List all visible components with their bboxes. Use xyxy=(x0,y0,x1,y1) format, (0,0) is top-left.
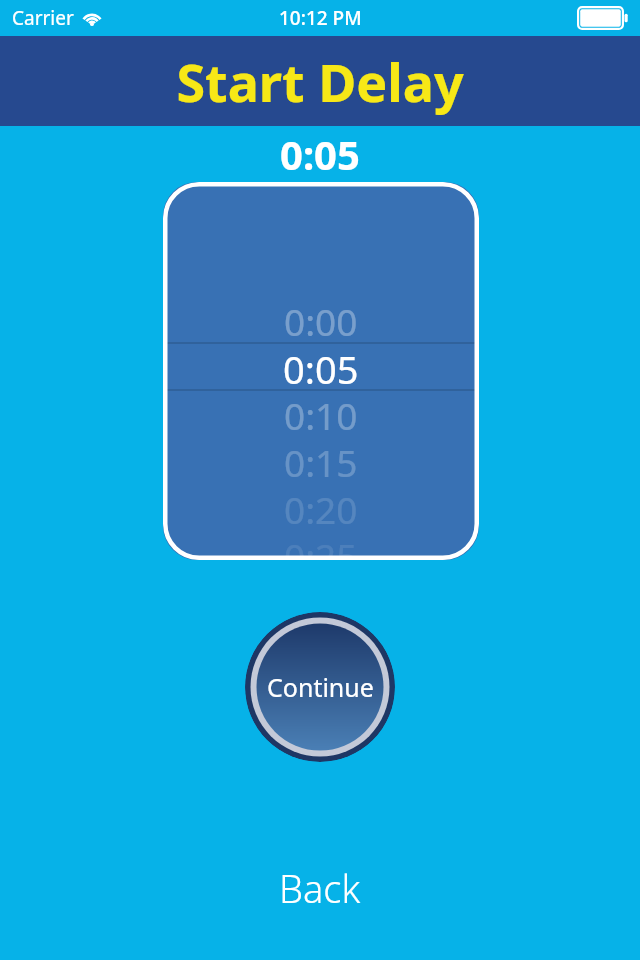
staticText: 0:15 xyxy=(284,437,358,484)
staticText: 0:25 xyxy=(284,531,358,560)
button[interactable]: 0:20 xyxy=(163,484,479,531)
staticText: 0:05 xyxy=(280,127,360,181)
button[interactable]: 0:10 xyxy=(163,390,479,437)
button[interactable]: 0:15 xyxy=(163,437,479,484)
staticText: 0:00 xyxy=(284,296,358,343)
button[interactable]: 0:00 xyxy=(163,296,479,343)
staticText: Continue xyxy=(267,670,374,704)
staticText: Back xyxy=(279,862,361,914)
staticText: Carrier xyxy=(12,5,74,31)
staticText: 0:05 xyxy=(283,343,359,390)
button[interactable]: Continue xyxy=(245,612,395,762)
staticText: 0:20 xyxy=(284,484,358,531)
staticText: 10:12 PM xyxy=(279,5,362,31)
staticText: 0:10 xyxy=(284,390,358,437)
other: Wi-Fi xyxy=(81,10,103,26)
button[interactable]: Back xyxy=(0,840,640,936)
button[interactable]: 0:05 xyxy=(163,343,479,390)
other: Battery xyxy=(577,6,629,30)
button[interactable]: 0:00 xyxy=(163,182,479,560)
button[interactable]: 0:25 xyxy=(163,531,479,560)
staticText: Start Delay xyxy=(176,46,464,117)
